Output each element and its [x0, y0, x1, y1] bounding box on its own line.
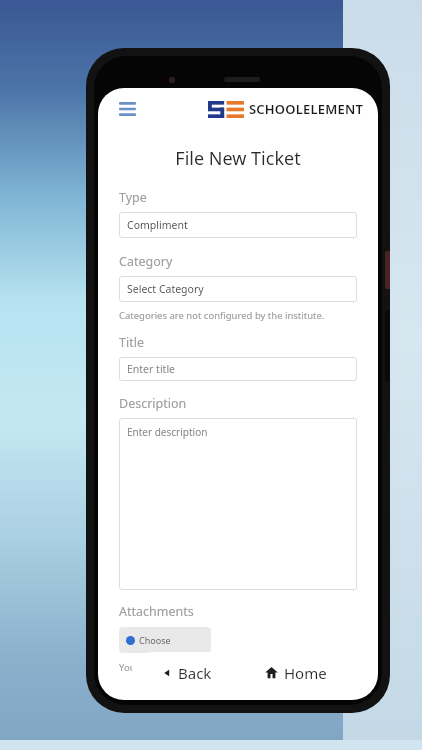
button[interactable]: Compliment: [119, 212, 357, 238]
button[interactable]: Enter title: [119, 357, 357, 381]
staticText: Category: [119, 253, 173, 270]
staticText: Choose: [139, 634, 171, 646]
staticText: Compliment: [127, 218, 188, 232]
staticText: Attachments: [119, 603, 194, 620]
staticText: Description: [119, 395, 187, 412]
staticText: Enter title: [127, 362, 176, 376]
button[interactable]: Home: [241, 652, 350, 693]
staticText: File New Ticket: [175, 146, 301, 171]
button[interactable]: Back: [132, 652, 241, 693]
staticText: Type: [119, 189, 147, 206]
staticText: Enter description: [127, 425, 208, 439]
staticText: SCHOOLELEMENT: [249, 100, 364, 118]
staticText: Back: [178, 663, 212, 683]
staticText: You can attach up to 3 files.: [119, 661, 241, 674]
button[interactable]: SCHOOLELEMENT: [208, 100, 364, 118]
button[interactable]: Open navigation menu: [114, 96, 140, 122]
button[interactable]: Select Category: [119, 276, 357, 302]
staticText: Home: [284, 663, 327, 683]
staticText: Select Category: [127, 282, 204, 296]
staticText: Categories are not configured by the ins…: [119, 309, 325, 322]
staticText: Title: [119, 334, 144, 351]
button[interactable]: Choose files: [119, 627, 211, 653]
button[interactable]: Enter description: [119, 418, 357, 590]
